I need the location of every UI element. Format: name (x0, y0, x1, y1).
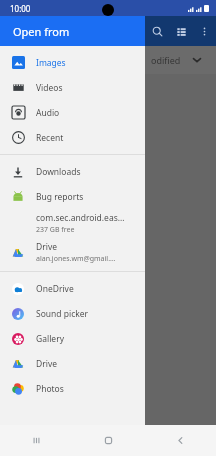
button[interactable]: Sound picker (0, 301, 145, 326)
button[interactable]: Recent (0, 125, 145, 150)
staticText: Open from (13, 24, 70, 39)
staticText: odified (151, 54, 181, 66)
button[interactable]: Search (145, 19, 169, 43)
staticText: OneDrive (36, 283, 74, 295)
button[interactable]: OneDrive (0, 276, 145, 301)
staticText: Drive (36, 241, 58, 253)
button[interactable]: More options (193, 19, 216, 43)
button[interactable]: Recent apps (0, 425, 72, 456)
staticText: Drive (36, 358, 58, 370)
staticText: Videos (36, 82, 63, 94)
staticText: Sound picker (36, 308, 89, 320)
staticText: Images (36, 57, 66, 69)
button[interactable]: Images (0, 50, 145, 75)
button[interactable]: com.sec.android.eas… (0, 209, 145, 238)
staticText: Audio (36, 107, 60, 119)
button[interactable]: Back (144, 425, 216, 456)
button[interactable]: Gallery (0, 326, 145, 351)
button[interactable]: Drive (0, 351, 145, 376)
button[interactable]: odified (145, 46, 216, 74)
button[interactable]: Grid view (169, 19, 193, 43)
button[interactable]: Audio (0, 100, 145, 125)
staticText: alan.jones.wm@gmail.… (36, 254, 116, 264)
staticText: com.sec.android.eas… (36, 212, 125, 224)
button[interactable]: Downloads (0, 159, 145, 184)
button[interactable]: Drive (0, 238, 145, 267)
staticText: Downloads (36, 166, 81, 178)
staticText: Bug reports (36, 191, 84, 203)
staticText: Photos (36, 383, 64, 395)
button[interactable]: Bug reports (0, 184, 145, 209)
staticText: Gallery (36, 333, 64, 345)
staticText: Recent (36, 132, 64, 144)
staticText: 237 GB free (36, 225, 75, 235)
button[interactable]: Photos (0, 376, 145, 401)
staticText: 10:00 (10, 3, 31, 14)
button[interactable]: Videos (0, 75, 145, 100)
button[interactable]: Home (72, 425, 144, 456)
